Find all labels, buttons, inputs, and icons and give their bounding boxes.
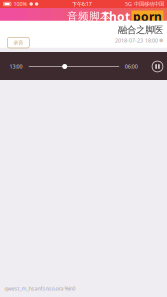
staticText: 音频脚本 xyxy=(67,10,111,23)
staticText: 融合之脚医 xyxy=(118,24,163,36)
staticText: 13:00 xyxy=(9,63,22,70)
staticText: 100% xyxy=(13,0,26,8)
button[interactable]: Pause xyxy=(152,61,163,72)
staticText: qwest_m_hsanfsnso.ora %in0 xyxy=(4,285,75,292)
staticText: 录音 xyxy=(13,39,23,46)
staticText: 2018-07-23 18:00 xyxy=(115,37,158,44)
staticText: Thot xyxy=(102,8,130,24)
staticText: 中国移动中国 xyxy=(134,1,164,7)
staticText: 下午6:17 xyxy=(72,0,92,8)
staticText: porn xyxy=(133,8,162,24)
button[interactable]: 录音 xyxy=(7,37,29,48)
staticText: 06:00 xyxy=(125,63,138,70)
staticText: 5G xyxy=(125,0,132,8)
